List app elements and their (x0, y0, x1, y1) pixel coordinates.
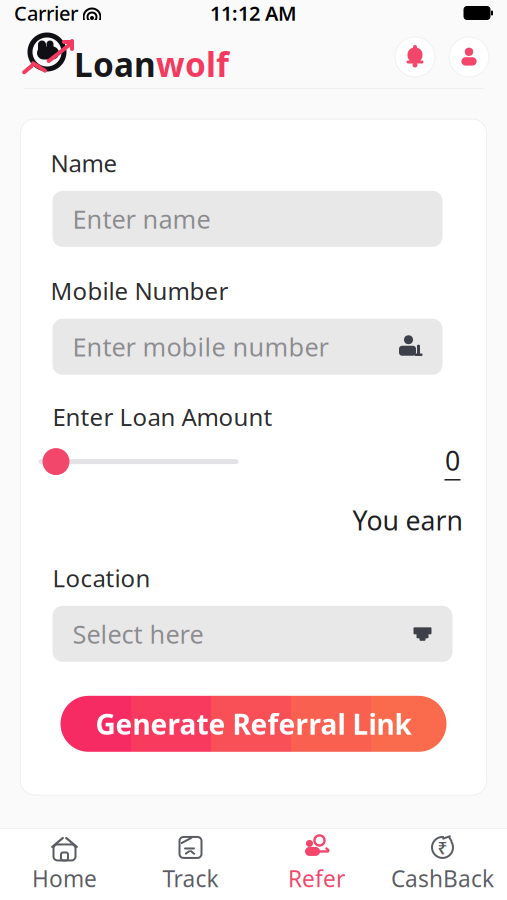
staticText: Carrier (14, 0, 78, 26)
button[interactable]: Refer (253, 833, 379, 895)
staticText: Home (32, 863, 97, 893)
staticText: Mobile Number (50, 275, 228, 307)
staticText: 11:12 AM (210, 0, 297, 26)
staticText: Enter name (72, 202, 210, 236)
staticText: Name (50, 147, 117, 179)
staticText: Enter Loan Amount (52, 401, 272, 433)
staticText: You earn (352, 502, 462, 538)
button[interactable]: Generate Referral Link (60, 696, 446, 752)
staticText: Location (52, 562, 150, 594)
staticText: ₹ (437, 836, 447, 859)
staticText: Select here (72, 617, 203, 651)
staticText: Generate Referral Link (95, 705, 411, 742)
button[interactable]: Notifications (395, 37, 435, 77)
staticText: Track (162, 863, 218, 893)
button[interactable]: ₹ (379, 833, 505, 895)
button[interactable]: Home (1, 833, 127, 895)
staticText: wolf (156, 42, 229, 86)
staticText: Refer (288, 863, 345, 893)
button[interactable]: Profile (449, 37, 489, 77)
staticText: Loan (74, 42, 156, 86)
button[interactable]: Track (127, 833, 253, 895)
staticText: Enter mobile number (72, 330, 328, 363)
staticText: CashBack (391, 863, 494, 893)
staticText: 0 (445, 443, 460, 478)
